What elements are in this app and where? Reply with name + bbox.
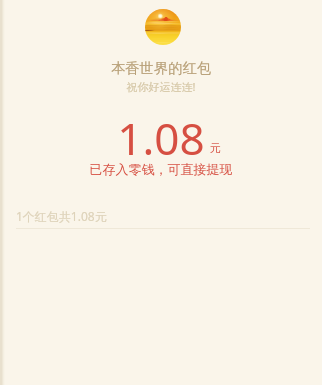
staticText: 1个红包共1.08元 — [16, 208, 107, 224]
staticText: 本香世界的红包 — [0, 59, 322, 77]
staticText: 祝你好运连连! — [0, 79, 322, 94]
button[interactable]: Sender avatar — [145, 9, 181, 45]
staticText: 1.08 — [0, 108, 322, 168]
staticText: 元 — [210, 141, 221, 155]
staticText: 已存入零钱，可直接提现 — [0, 161, 322, 177]
